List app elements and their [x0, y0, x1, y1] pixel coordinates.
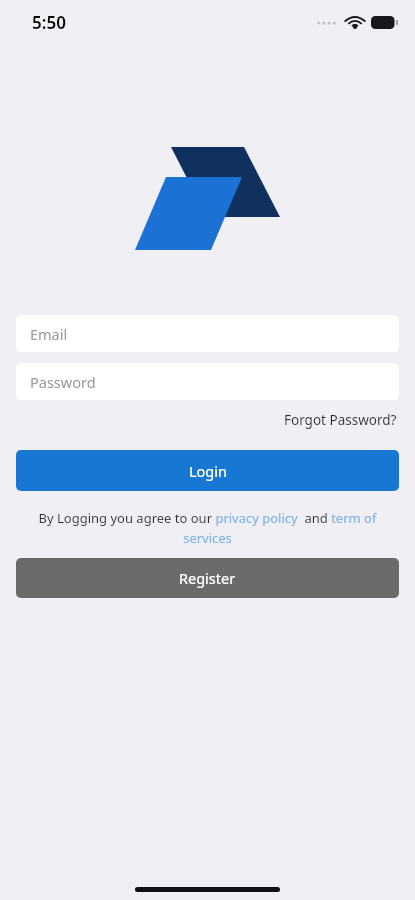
staticText: Forgot Password?	[284, 411, 397, 429]
button[interactable]: Login	[16, 450, 399, 491]
button[interactable]: Forgot Password?	[282, 407, 399, 433]
button[interactable]: Email	[16, 315, 399, 352]
button[interactable]: Password	[16, 363, 399, 400]
staticText: 5:50	[32, 11, 66, 34]
staticText: Login	[189, 461, 227, 481]
staticText: Register	[179, 568, 236, 588]
staticText: Email	[30, 324, 68, 344]
staticText: Password	[30, 372, 96, 392]
staticText: By Logging you agree to our privacy poli…	[24, 509, 391, 547]
button[interactable]: Register	[16, 558, 399, 598]
other: App logo	[135, 147, 280, 250]
